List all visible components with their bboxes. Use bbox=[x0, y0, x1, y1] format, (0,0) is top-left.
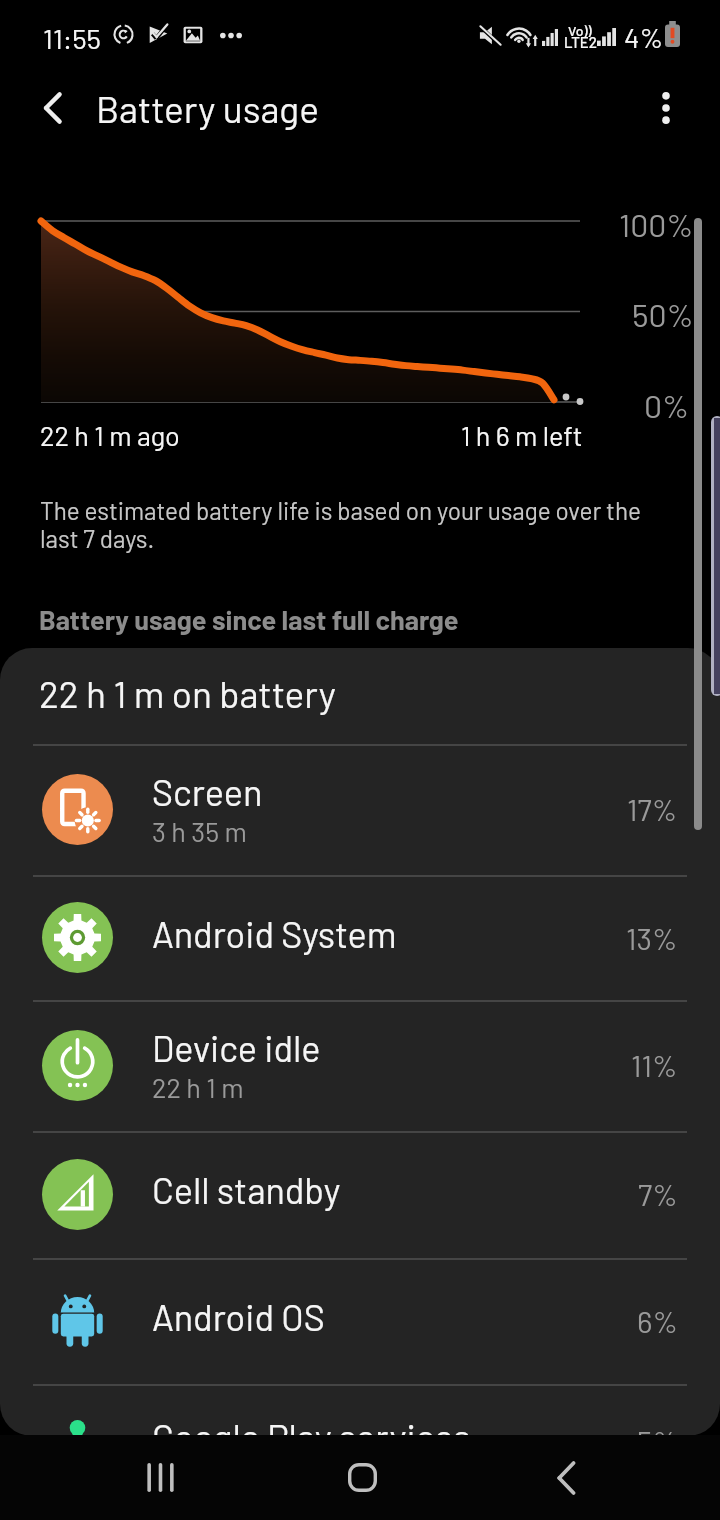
staticText: 22 h 1 m on battery bbox=[39, 671, 336, 715]
staticText: 11:55 bbox=[43, 21, 101, 55]
staticText: 22 h 1 m bbox=[152, 1071, 244, 1103]
staticText: 50% bbox=[632, 295, 694, 333]
button[interactable]: Cell standby bbox=[0, 1131, 720, 1258]
staticText: Vo)) bbox=[568, 22, 592, 39]
staticText: Battery usage bbox=[96, 86, 319, 130]
staticText: Battery usage since last full charge bbox=[39, 603, 459, 635]
staticText: 0% bbox=[644, 386, 690, 424]
staticText: 6% bbox=[637, 1303, 678, 1339]
staticText: 4% bbox=[624, 20, 664, 54]
staticText: 17% bbox=[627, 791, 678, 827]
button[interactable]: Google Play services bbox=[0, 1384, 720, 1436]
staticText: 100% bbox=[619, 205, 694, 243]
staticText: 3 h 35 m bbox=[152, 815, 247, 847]
staticText: LTE2 bbox=[564, 33, 597, 51]
staticText: Cell standby bbox=[152, 1168, 341, 1211]
button[interactable]: Device idle bbox=[0, 1000, 720, 1131]
button[interactable]: Android OS bbox=[0, 1258, 720, 1385]
staticText: Android OS bbox=[152, 1295, 325, 1338]
staticText: 22 h 1 m ago bbox=[40, 419, 180, 451]
staticText: last 7 days. bbox=[40, 524, 155, 553]
staticText: Android System bbox=[152, 912, 397, 955]
staticText: Screen bbox=[152, 770, 263, 813]
button[interactable]: Back bbox=[517, 1435, 609, 1520]
button[interactable]: Android System bbox=[0, 875, 720, 1001]
button[interactable]: Navigate up bbox=[22, 76, 86, 140]
staticText: 11% bbox=[631, 1047, 678, 1083]
staticText: The estimated battery life is based on y… bbox=[40, 496, 641, 525]
staticText: 1 h 6 m left bbox=[461, 419, 583, 451]
button[interactable]: Home bbox=[314, 1435, 406, 1520]
staticText: 5% bbox=[637, 1423, 678, 1436]
staticText: Device idle bbox=[152, 1026, 321, 1069]
staticText: Google Play services bbox=[152, 1415, 471, 1436]
button[interactable]: More options bbox=[634, 76, 698, 140]
staticText: 13% bbox=[626, 920, 678, 956]
button[interactable]: Recent apps bbox=[111, 1435, 203, 1520]
staticText: 7% bbox=[638, 1176, 678, 1212]
button[interactable]: Screen bbox=[0, 744, 720, 875]
